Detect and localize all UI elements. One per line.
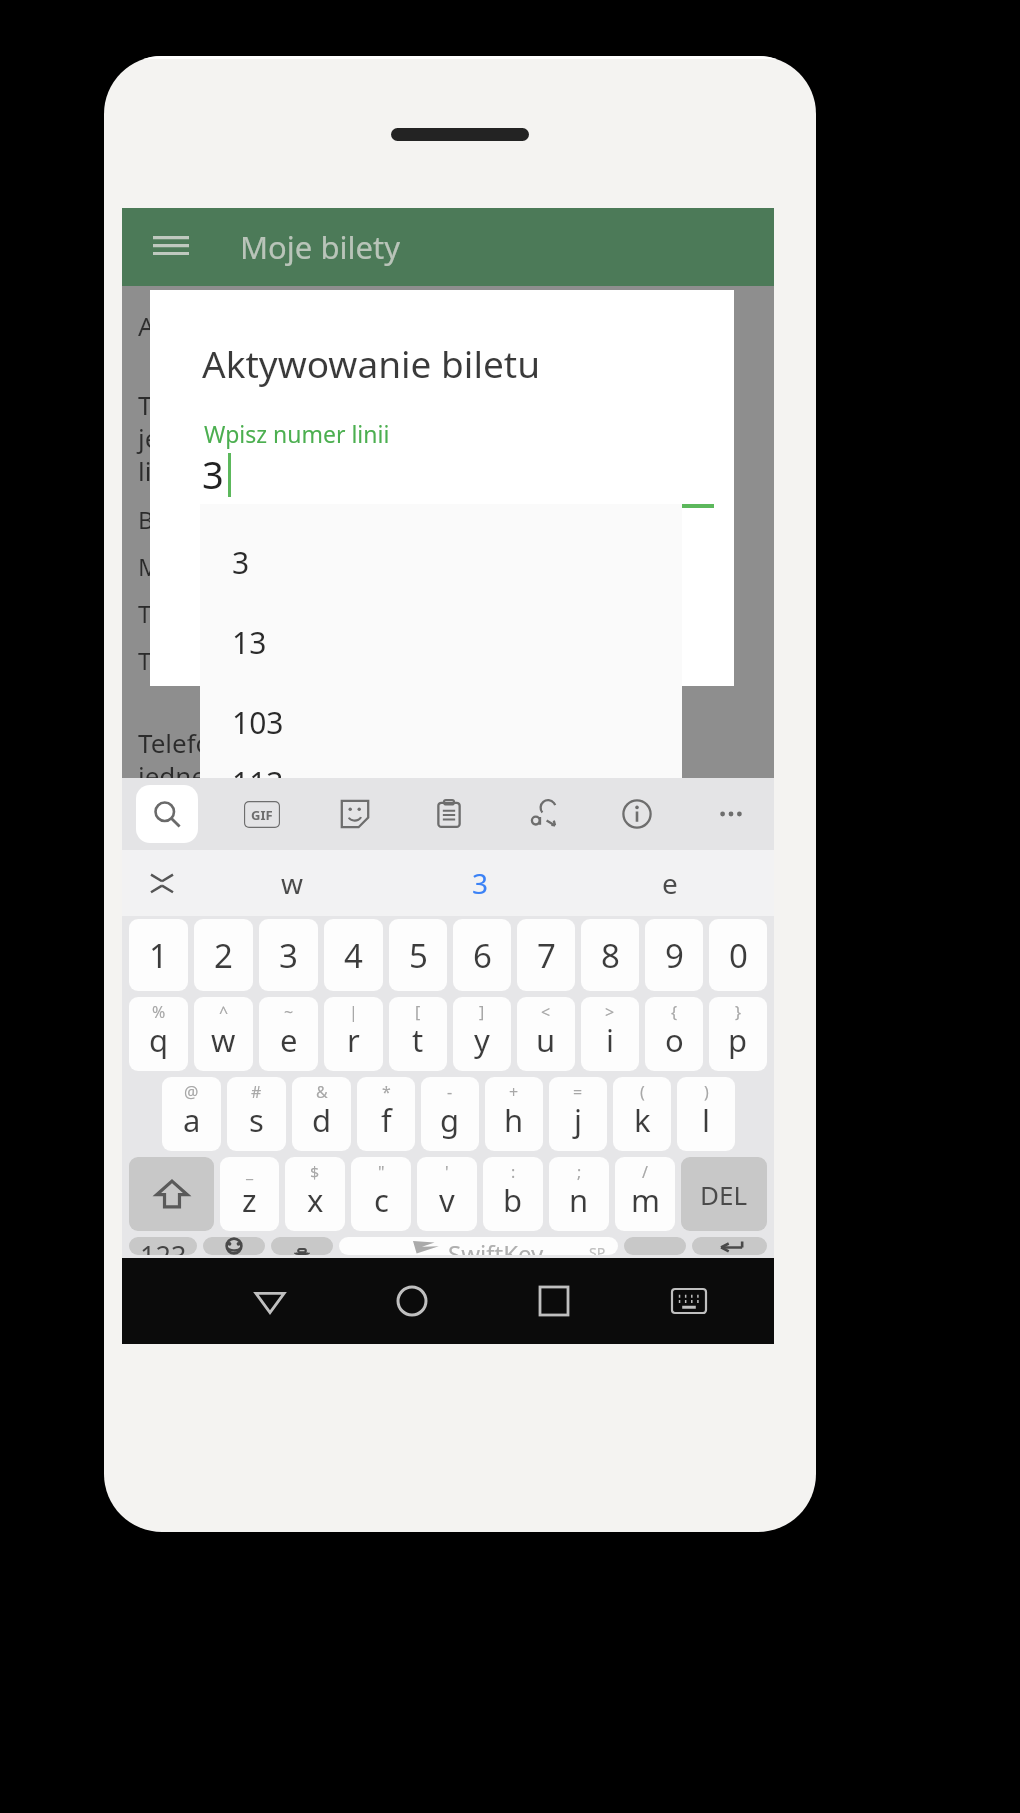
button[interactable]: [ — [389, 997, 447, 1071]
staticText: b — [503, 1179, 523, 1221]
button[interactable]: Home — [341, 1258, 483, 1344]
button[interactable]: Voice input — [271, 1237, 333, 1255]
button[interactable]: & — [292, 1077, 351, 1151]
button[interactable]: GIF keyboard — [233, 785, 291, 843]
button[interactable]: " — [351, 1157, 411, 1231]
staticText: # — [251, 1081, 262, 1103]
staticText: 3 — [232, 542, 250, 583]
button[interactable]: } — [709, 997, 767, 1071]
staticText: v — [439, 1179, 455, 1221]
staticText: y — [474, 1019, 490, 1061]
staticText: { — [671, 1001, 678, 1023]
button[interactable]: 3 — [259, 919, 318, 991]
button[interactable]: Search — [136, 785, 198, 843]
button[interactable]: > — [581, 997, 639, 1071]
button[interactable]: = — [549, 1077, 607, 1151]
staticText: z — [242, 1179, 257, 1221]
button[interactable]: $ — [285, 1157, 345, 1231]
staticText: s — [249, 1099, 264, 1141]
button[interactable]: ^ — [194, 997, 253, 1071]
button[interactable]: Space — [339, 1237, 618, 1255]
staticText: Bilet — [138, 503, 189, 536]
button[interactable]: Stickers — [326, 785, 384, 843]
staticText: 4 — [344, 933, 363, 978]
button[interactable]: < — [517, 997, 575, 1071]
button[interactable]: Shift — [129, 1157, 214, 1231]
staticText: k — [634, 1099, 651, 1141]
staticText: e — [280, 1019, 298, 1061]
staticText: t — [412, 1019, 424, 1061]
staticText: % — [152, 1001, 166, 1023]
staticText: e — [662, 864, 678, 902]
staticText: SwiftKey — [448, 1237, 544, 1255]
staticText: d — [312, 1099, 332, 1141]
button[interactable]: : — [483, 1157, 543, 1231]
button[interactable]: Clipboard — [420, 785, 478, 843]
staticText: * — [382, 1081, 391, 1103]
button[interactable]: Punctuation — [624, 1237, 686, 1255]
button[interactable]: Recent apps — [483, 1258, 625, 1344]
button[interactable]: Keyboard — [625, 1258, 753, 1344]
button[interactable]: @ — [162, 1077, 221, 1151]
button[interactable]: * — [357, 1077, 415, 1151]
button[interactable]: _ — [220, 1157, 279, 1231]
button[interactable]: # — [227, 1077, 286, 1151]
button[interactable]: 8 — [581, 919, 639, 991]
button[interactable]: ~ — [259, 997, 318, 1071]
button[interactable]: ] — [453, 997, 511, 1071]
staticText: ] — [479, 1001, 485, 1023]
button[interactable]: 7 — [517, 919, 575, 991]
button[interactable]: 123 — [129, 1237, 197, 1255]
button[interactable]: 113 — [200, 762, 682, 778]
button[interactable]: + — [485, 1077, 543, 1151]
button[interactable]: % — [129, 997, 188, 1071]
staticText: | — [349, 1001, 358, 1023]
button[interactable]: 5 — [389, 919, 447, 991]
button[interactable]: Expand suggestions — [140, 861, 184, 905]
staticText: 1 — [149, 933, 168, 978]
button[interactable]: { — [645, 997, 703, 1071]
staticText: $ — [310, 1161, 320, 1183]
staticText: Trasa — [138, 644, 198, 677]
staticText: SP — [589, 1243, 606, 1255]
button[interactable]: ; — [549, 1157, 609, 1231]
button[interactable]: ( — [613, 1077, 671, 1151]
button[interactable]: Delete — [681, 1157, 767, 1231]
button[interactable]: Open navigation menu — [144, 220, 198, 274]
button[interactable]: e — [575, 850, 764, 916]
button[interactable]: 9 — [645, 919, 703, 991]
button[interactable]: 2 — [194, 919, 253, 991]
button[interactable]: Back — [199, 1258, 341, 1344]
staticText: l — [702, 1099, 710, 1141]
staticText: f — [381, 1099, 392, 1141]
button[interactable]: Emoji — [203, 1237, 265, 1255]
staticText: 3 — [472, 864, 489, 902]
staticText: r — [347, 1019, 360, 1061]
button[interactable]: 13 — [200, 602, 682, 682]
button[interactable]: / — [615, 1157, 675, 1231]
staticText: 0 — [729, 933, 748, 978]
button[interactable]: More options — [702, 785, 760, 843]
button[interactable]: 3 — [200, 522, 682, 602]
staticText: GIF — [251, 806, 273, 824]
staticText: h — [504, 1099, 524, 1141]
button[interactable]: Enter — [692, 1237, 767, 1255]
button[interactable]: Info — [608, 785, 666, 843]
button[interactable]: Translate — [514, 785, 572, 843]
button[interactable]: 3 — [386, 850, 575, 916]
button[interactable]: ' — [417, 1157, 477, 1231]
staticText: u — [536, 1019, 556, 1061]
button[interactable]: w — [198, 850, 386, 916]
button[interactable]: ) — [677, 1077, 735, 1151]
button[interactable]: | — [324, 997, 383, 1071]
button[interactable]: 1 — [129, 919, 188, 991]
button[interactable]: - — [421, 1077, 479, 1151]
staticText: p — [728, 1019, 748, 1061]
button[interactable]: 6 — [453, 919, 511, 991]
button[interactable]: 4 — [324, 919, 383, 991]
button[interactable]: 0 — [709, 919, 767, 991]
staticText: + — [509, 1081, 519, 1103]
staticText: 9 — [665, 933, 684, 978]
button[interactable]: 103 — [200, 682, 682, 762]
